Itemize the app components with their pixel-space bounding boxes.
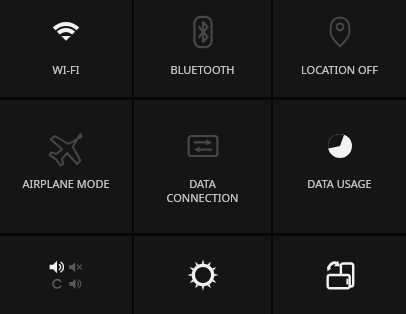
button[interactable]: Bluetooth [134,0,271,97]
button[interactable]: Wi-Fi [0,0,132,97]
button[interactable]: Airplane mode [0,100,132,233]
staticText: BLUETOOTH [136,62,269,77]
button[interactable]: Auto rotate [273,236,406,314]
staticText: DATA USAGE [275,176,404,191]
staticText: LOCATION OFF [275,62,404,77]
staticText: DATA CONNECTION [136,176,269,205]
button[interactable]: Brightness [134,236,271,314]
button[interactable]: Data connection [134,100,271,233]
button[interactable]: Sound mode [0,236,132,314]
button[interactable]: Location off [273,0,406,97]
button[interactable]: Data usage [273,100,406,233]
staticText: AIRPLANE MODE [2,176,130,191]
staticText: WI-FI [2,62,130,77]
